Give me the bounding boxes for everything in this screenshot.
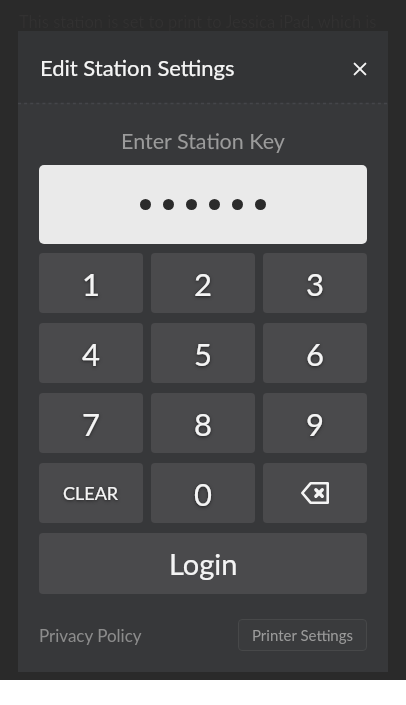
staticText: 0 xyxy=(194,475,212,512)
button[interactable]: Privacy Policy xyxy=(39,619,142,651)
button[interactable]: 6 xyxy=(263,323,367,383)
button[interactable]: 1 xyxy=(39,253,143,313)
button[interactable]: 9 xyxy=(263,393,367,453)
staticText: Edit Station Settings xyxy=(40,54,235,80)
button[interactable]: Close xyxy=(343,52,377,86)
button[interactable]: 8 xyxy=(151,393,255,453)
staticText: 4 xyxy=(82,335,100,372)
staticText: CLEAR xyxy=(63,482,119,504)
staticText: 5 xyxy=(194,335,212,372)
button[interactable]: 5 xyxy=(151,323,255,383)
button[interactable]: 0 xyxy=(151,463,255,523)
staticText: 6 xyxy=(306,335,324,372)
staticText: This station is set to print to Jessica … xyxy=(19,12,377,32)
staticText: Login xyxy=(169,546,238,581)
staticText: Enter Station Key xyxy=(18,128,388,154)
staticText: Printer Settings xyxy=(252,626,354,644)
button[interactable]: 7 xyxy=(39,393,143,453)
button[interactable]: CLEAR xyxy=(39,463,143,523)
staticText: 9 xyxy=(306,405,324,442)
button[interactable]: Printer Settings xyxy=(238,619,367,651)
button[interactable]: Login xyxy=(39,533,367,594)
button[interactable] xyxy=(39,165,367,244)
staticText: 3 xyxy=(306,265,324,302)
staticText: 1 xyxy=(82,265,100,302)
staticText: 2 xyxy=(194,265,212,302)
button[interactable]: 4 xyxy=(39,323,143,383)
button[interactable]: Backspace xyxy=(263,463,367,523)
button[interactable]: 2 xyxy=(151,253,255,313)
staticText: 8 xyxy=(194,405,212,442)
button[interactable]: 3 xyxy=(263,253,367,313)
staticText: Privacy Policy xyxy=(39,625,142,645)
staticText: 7 xyxy=(82,405,100,442)
